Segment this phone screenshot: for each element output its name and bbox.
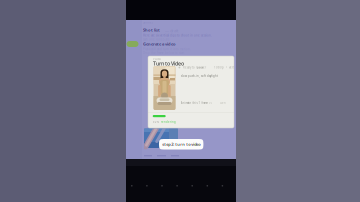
staticText: Shot list [143,27,160,32]
staticText: Turn to Video [153,60,184,67]
staticText: 5s [208,101,211,105]
staticText: VIDEO [153,57,161,61]
button[interactable]: Selected project [126,41,138,47]
staticText: Here are six vertical clips to shoot in … [143,34,212,37]
staticText: step 2: turn to video [162,142,200,147]
staticText: Ready to render [183,66,206,69]
staticText: 50% [197,66,203,69]
staticText: rendering [161,120,176,124]
staticText: Generate a video [143,41,176,46]
staticText: Animate this 1 frame [180,101,208,105]
staticText: slow push-in, soft daylight [181,74,218,78]
staticText: Gen [220,101,226,105]
staticText: 50% [153,120,159,124]
staticText: 1080p • vertical [214,66,238,69]
